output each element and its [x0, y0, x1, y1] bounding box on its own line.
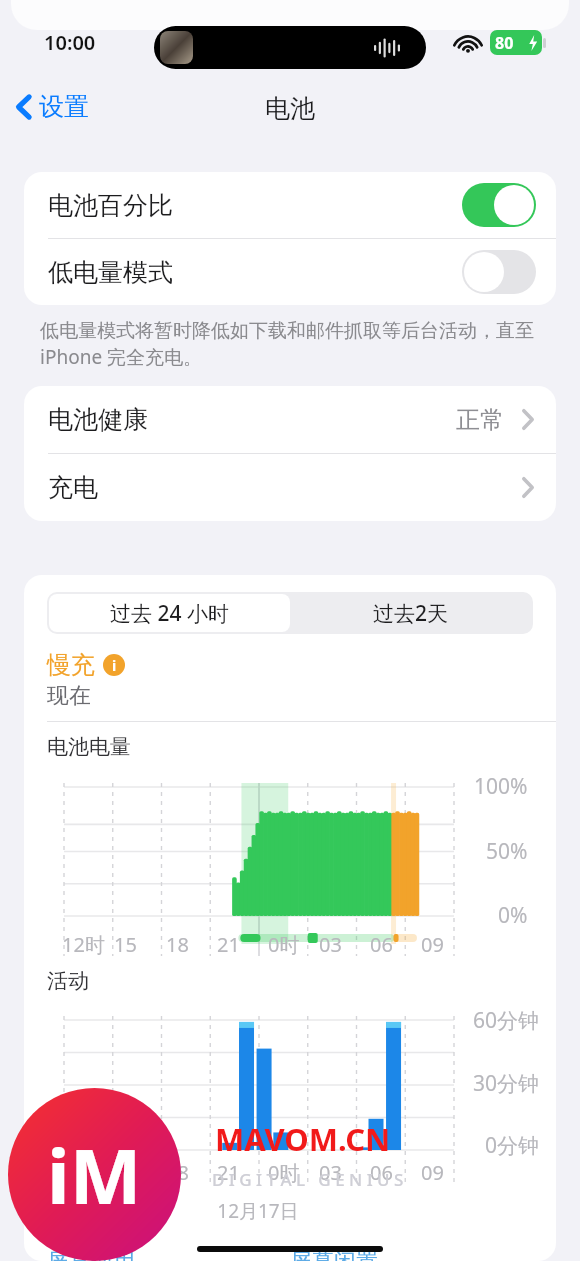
staticText: 03	[319, 931, 342, 958]
staticText: D I G I T A L G E N I U S	[212, 1168, 404, 1191]
staticText: 21	[217, 931, 240, 958]
staticText: 0分钟	[485, 1131, 540, 1160]
button[interactable]: 低电量模式	[24, 239, 556, 305]
staticText: 低电量模式	[48, 257, 462, 288]
staticText: 12月17日	[24, 1198, 492, 1224]
staticText: MAVOM.CN	[215, 1118, 391, 1160]
staticText: 设置	[39, 91, 89, 122]
staticText: 06	[370, 931, 393, 958]
staticText: 电池电量	[47, 734, 131, 760]
staticText: iM	[47, 1123, 142, 1227]
staticText: 12时	[62, 1159, 105, 1186]
button[interactable]: 充电	[24, 454, 556, 521]
staticText: 0时	[268, 931, 300, 958]
staticText: 100%	[474, 772, 528, 801]
staticText: 慢充	[47, 650, 95, 680]
staticText: 充电	[48, 472, 522, 503]
staticText: 80	[495, 32, 514, 54]
staticText: 18	[166, 1159, 189, 1186]
button[interactable]: 过去 24 小时	[49, 594, 290, 632]
button[interactable]: 设置	[10, 87, 95, 126]
staticText: 正常	[456, 405, 504, 435]
staticText: 过去 24 小时	[110, 599, 229, 628]
staticText: 60分钟	[473, 1006, 540, 1035]
staticText: 0时	[268, 1159, 300, 1186]
staticText: 50%	[486, 837, 528, 866]
staticText: 12时	[62, 931, 105, 958]
staticText: 30分钟	[473, 1069, 540, 1098]
staticText: 电池健康	[48, 404, 456, 435]
button[interactable]: 信息	[103, 654, 125, 676]
staticText: i	[112, 656, 117, 675]
staticText: 现在	[47, 682, 91, 710]
staticText: 活动	[47, 968, 89, 994]
staticText: 21	[217, 1159, 240, 1186]
button[interactable]: 过去2天	[290, 594, 531, 632]
staticText: 屏幕使用	[47, 1248, 135, 1261]
staticText: 03	[319, 1159, 342, 1186]
staticText: 10:00	[44, 29, 96, 56]
staticText: 09	[421, 1159, 444, 1186]
staticText: 低电量模式将暂时降低如下载和邮件抓取等后台活动，直至 iPhone 完全充电。	[40, 319, 534, 370]
staticText: 06	[370, 1159, 393, 1186]
staticText: 15	[114, 1159, 137, 1186]
staticText: 18	[166, 931, 189, 958]
staticText: 09	[421, 931, 444, 958]
button[interactable]: 电池健康	[24, 386, 556, 453]
staticText: 过去2天	[373, 599, 449, 628]
staticText: 0%	[498, 901, 528, 930]
button[interactable]: 电池百分比	[24, 172, 556, 238]
staticText: 屏幕闲置	[290, 1248, 378, 1261]
staticText: 电池百分比	[48, 190, 462, 221]
staticText: 15	[114, 931, 137, 958]
staticText: 电池	[265, 93, 315, 124]
